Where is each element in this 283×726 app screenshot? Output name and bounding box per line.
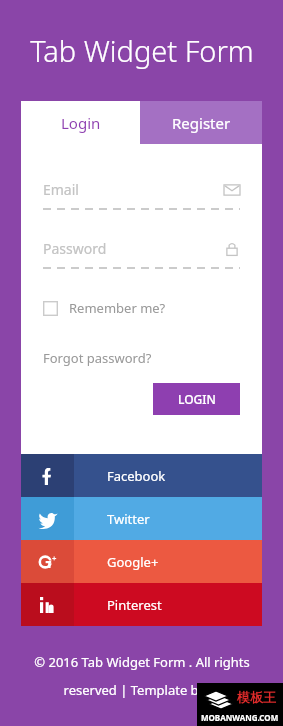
button[interactable]: Pinterest [21, 583, 262, 626]
staticText: Email [43, 180, 224, 199]
staticText: Login [61, 113, 101, 133]
staticText: Google+ [107, 553, 159, 571]
staticText: Facebook [107, 467, 166, 485]
staticText: Remember me? [69, 299, 166, 317]
button[interactable]: Facebook [21, 454, 262, 497]
button[interactable]: Register [140, 101, 262, 144]
staticText: MOBANWANG.COM [201, 712, 279, 723]
button[interactable]: LOGIN [153, 383, 240, 415]
button[interactable]: Password [43, 239, 240, 269]
button[interactable]: Remember me? [43, 297, 166, 319]
button[interactable]: Forgot password? [43, 349, 152, 367]
staticText: LOGIN [178, 391, 216, 407]
staticText: Tab Widget Form [30, 31, 254, 70]
staticText: Register [172, 113, 231, 133]
button[interactable]: Email [43, 180, 240, 210]
other: Password icon [224, 241, 240, 257]
staticText: Pinterest [107, 596, 162, 614]
other: Twitter [38, 509, 58, 529]
staticText: 模板王 [237, 689, 276, 705]
button[interactable]: Twitter [21, 497, 262, 540]
staticText: Password [43, 239, 224, 258]
other: Email icon [224, 182, 240, 198]
other: Pinterest [38, 595, 58, 615]
other: Facebook [38, 466, 58, 486]
staticText: © 2016 Tab Widget Form . All rights rese… [34, 653, 250, 699]
staticText: Twitter [107, 510, 150, 528]
button[interactable]: Google+ [21, 540, 262, 583]
button[interactable]: Login [21, 101, 140, 144]
other: Google+ [38, 552, 58, 572]
